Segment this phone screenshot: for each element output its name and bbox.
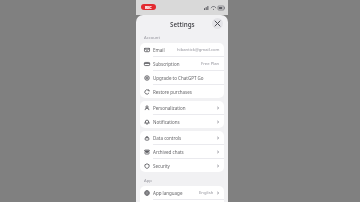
staticText: Settings (170, 20, 195, 28)
staticText: hibantick@gmail.com (177, 47, 220, 53)
button[interactable]: Security (140, 159, 224, 172)
staticText: REC (145, 5, 152, 10)
staticText: English (199, 190, 214, 196)
staticText: Data controls (153, 135, 182, 141)
button[interactable]: Upgrade to ChatGPT Go (140, 71, 224, 84)
staticText: Account (144, 35, 160, 41)
button[interactable]: Subscription (140, 57, 224, 70)
staticText: Email (153, 47, 165, 53)
button[interactable]: Restore purchases (140, 85, 224, 98)
staticText: Restore purchases (153, 89, 192, 95)
staticText: App (144, 178, 152, 184)
staticText: Subscription (153, 61, 180, 67)
staticText: App language (153, 190, 183, 196)
staticText: Upgrade to ChatGPT Go (153, 75, 204, 81)
staticText: Security (153, 163, 170, 169)
staticText: Personalization (153, 105, 186, 111)
button[interactable]: Data controls (140, 131, 224, 144)
button[interactable]: Notifications (140, 115, 224, 128)
staticText: Free Plan (201, 61, 220, 67)
button[interactable]: Close settings (212, 18, 223, 29)
button[interactable]: Personalization (140, 101, 224, 114)
button[interactable]: App language (140, 186, 224, 199)
staticText: Notifications (153, 119, 180, 125)
button[interactable]: Email (140, 43, 224, 56)
staticText: Archived chats (153, 149, 184, 155)
button[interactable]: Archived chats (140, 145, 224, 158)
